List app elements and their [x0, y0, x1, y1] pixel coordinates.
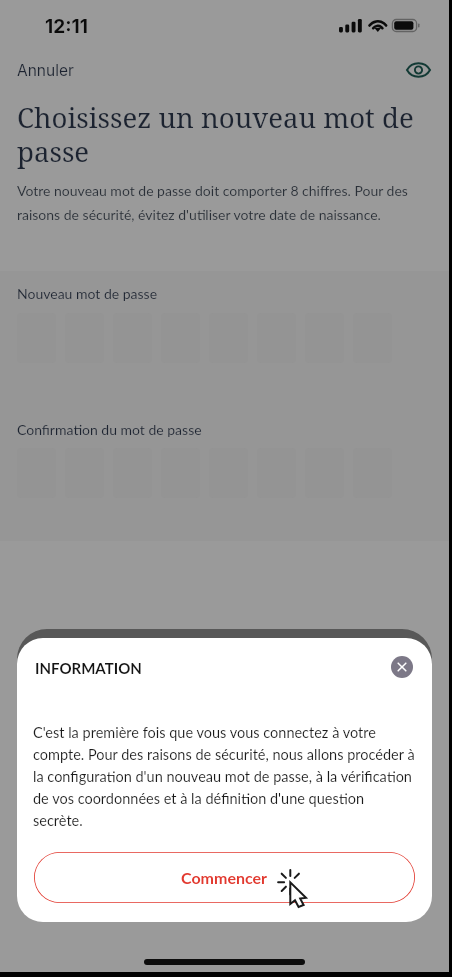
staticText: C'est la première fois que vous vous con…	[33, 724, 415, 829]
button[interactable]: Commencer	[34, 852, 415, 903]
staticText: Annuler	[17, 61, 74, 80]
button[interactable]: Annuler	[5, 54, 86, 87]
staticText: Nouveau mot de passe	[17, 285, 158, 302]
staticText: 12:11	[45, 15, 88, 38]
staticText: Choisissez un nouveau mot de passe	[17, 98, 417, 171]
staticText: Commencer	[181, 868, 268, 887]
staticText: Confirmation du mot de passe	[17, 421, 202, 438]
staticText: Votre nouveau mot de passe doit comporte…	[17, 182, 416, 223]
staticText: INFORMATION	[35, 659, 142, 677]
button[interactable]: Afficher le mot de passe	[401, 53, 435, 87]
button[interactable]: Fermer	[391, 656, 413, 678]
